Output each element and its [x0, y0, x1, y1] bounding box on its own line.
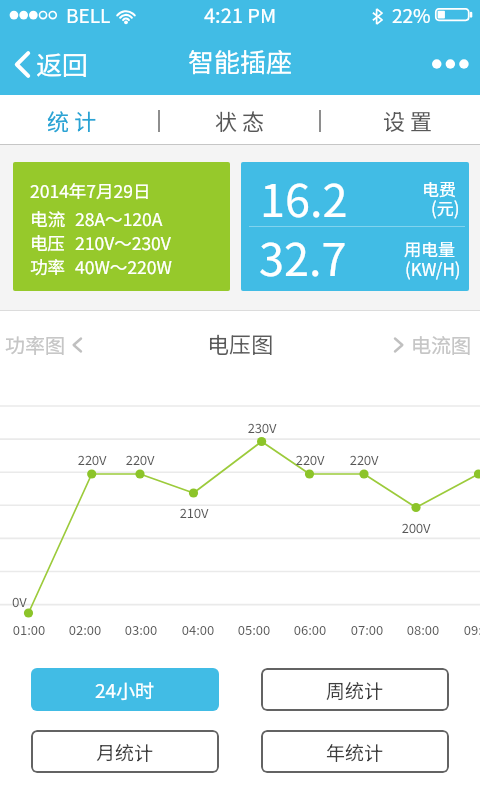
staticText: 06:00	[280, 620, 340, 639]
staticText: BELL	[66, 1, 111, 29]
staticText: 4:21 PM	[204, 0, 277, 29]
button[interactable]: 返回	[0, 35, 103, 93]
button[interactable]: 年统计	[261, 730, 449, 773]
staticText: 年统计	[326, 738, 384, 766]
button[interactable]: More options	[414, 41, 480, 90]
button[interactable]: 状 态	[168, 95, 310, 144]
staticText: 220V	[62, 450, 122, 469]
button[interactable]: 月统计	[31, 730, 219, 773]
staticText: 24小时	[95, 676, 155, 704]
staticText: 统 计	[47, 104, 96, 136]
staticText: (元)	[431, 195, 460, 220]
staticText: 智能插座	[188, 42, 293, 80]
staticText: 状 态	[215, 104, 264, 136]
staticText: 功率	[30, 254, 65, 279]
staticText: 电压图	[207, 327, 274, 359]
staticText: 0V	[12, 592, 27, 611]
button[interactable]: 设 置	[336, 95, 478, 144]
staticText: 32.7	[259, 224, 347, 289]
staticText: 220V	[334, 450, 394, 469]
button[interactable]: 统 计	[0, 95, 142, 144]
button[interactable]: 周统计	[261, 668, 449, 711]
staticText: 电费	[422, 176, 456, 201]
staticText: 02:00	[55, 620, 115, 639]
button[interactable]: 功率图	[5, 324, 83, 365]
button[interactable]: 电流图	[393, 324, 471, 365]
button[interactable]: 24小时	[31, 668, 219, 711]
staticText: 40W～220W	[75, 254, 172, 279]
staticText: (KW/H)	[405, 256, 461, 281]
staticText: 07:00	[337, 620, 397, 639]
staticText: 设 置	[383, 104, 432, 136]
staticText: 16.2	[260, 165, 348, 230]
staticText: 2014年7月29日	[30, 178, 151, 203]
staticText: 电压	[30, 230, 65, 255]
staticText: 08:00	[393, 620, 453, 639]
staticText: 01:00	[0, 620, 59, 639]
staticText: 220V	[280, 450, 340, 469]
staticText: 210V	[164, 503, 224, 522]
button[interactable]: 16.2	[241, 162, 469, 291]
staticText: 电流图	[411, 330, 471, 359]
staticText: 电流	[30, 206, 65, 231]
staticText: 功率图	[5, 330, 65, 359]
staticText: 210V～230V	[75, 230, 171, 255]
staticText: 用电量	[404, 236, 455, 261]
staticText: 返回	[36, 45, 89, 83]
staticText: 09:00	[450, 620, 480, 639]
button[interactable]: 2014年7月29日	[13, 162, 230, 291]
staticText: 03:00	[111, 620, 171, 639]
staticText: 周统计	[326, 676, 384, 704]
staticText: 200V	[386, 518, 446, 537]
staticText: 220V	[110, 450, 170, 469]
staticText: 月统计	[96, 738, 154, 766]
staticText: 05:00	[224, 620, 284, 639]
staticText: 22%	[392, 1, 431, 29]
staticText: 28A～120A	[75, 206, 163, 231]
staticText: 04:00	[168, 620, 228, 639]
staticText: 230V	[232, 418, 292, 437]
